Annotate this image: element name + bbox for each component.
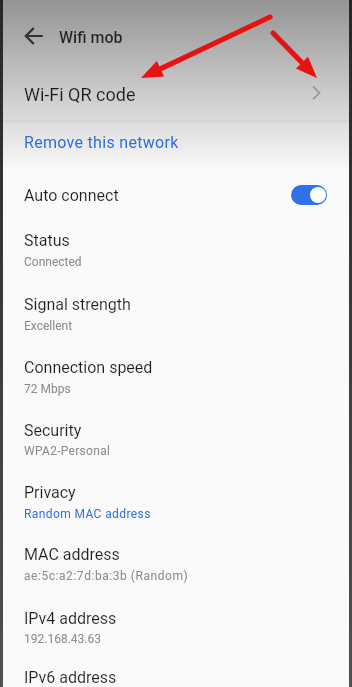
staticText: Wi-Fi QR code [24, 84, 136, 105]
button[interactable]: Remove this network [0, 126, 352, 163]
staticText: Random MAC address [24, 507, 151, 521]
staticText: Security [24, 421, 82, 440]
staticText: IPv6 address [24, 668, 117, 687]
staticText: IPv4 address [24, 609, 117, 628]
button[interactable] [16, 18, 52, 54]
staticText: Signal strength [24, 295, 131, 314]
staticText: WPA2-Personal [24, 444, 111, 458]
staticText: Remove this network [24, 133, 179, 152]
staticText: ae:5c:a2:7d:ba:3b (Random) [24, 569, 189, 583]
staticText: Excellent [24, 319, 73, 333]
staticText: MAC address [24, 545, 120, 564]
button[interactable]: Auto connect [0, 171, 352, 219]
button[interactable]: Privacy [0, 468, 352, 528]
staticText: Connected [24, 255, 82, 269]
staticText: Wifi mob [59, 28, 123, 47]
button[interactable]: Wi-Fi QR code [0, 71, 352, 118]
staticText: 72 Mbps [24, 382, 71, 396]
staticText: 192.168.43.63 [24, 632, 101, 646]
staticText: Connection speed [24, 358, 153, 377]
staticText: Auto connect [24, 186, 119, 205]
staticText: Privacy [24, 483, 76, 502]
staticText: Status [24, 231, 70, 250]
